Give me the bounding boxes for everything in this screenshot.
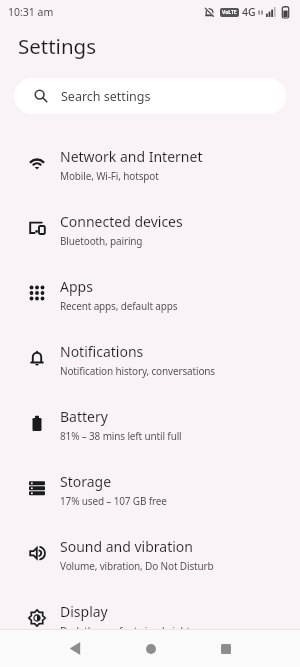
staticText: 10:31 am bbox=[8, 5, 54, 19]
staticText: Apps bbox=[60, 277, 93, 296]
staticText: Settings bbox=[18, 32, 97, 60]
button[interactable]: Search settings bbox=[14, 78, 286, 114]
button[interactable]: Battery bbox=[0, 390, 300, 455]
staticText: Dark theme, font size, brightness bbox=[60, 624, 211, 638]
staticText: Network and Internet bbox=[60, 147, 203, 166]
staticText: Sound and vibration bbox=[60, 537, 193, 556]
staticText: Mobile, Wi-Fi, hotspot bbox=[60, 169, 159, 183]
staticText: 4G bbox=[242, 5, 256, 19]
button[interactable] bbox=[38, 630, 113, 667]
staticText: Search settings bbox=[61, 88, 151, 105]
staticText: 17% used – 107 GB free bbox=[60, 494, 167, 508]
staticText: 81% – 38 mins left until full bbox=[60, 429, 182, 443]
button[interactable]: Apps bbox=[0, 260, 300, 325]
button[interactable]: Display bbox=[0, 585, 300, 650]
staticText: Volume, vibration, Do Not Disturb bbox=[60, 559, 214, 573]
staticText: Recent apps, default apps bbox=[60, 299, 178, 313]
staticText: Storage bbox=[60, 472, 112, 491]
button[interactable]: Connected devices bbox=[0, 195, 300, 260]
staticText: Connected devices bbox=[60, 212, 183, 231]
staticText: Notifications bbox=[60, 342, 144, 361]
staticText: Battery bbox=[60, 407, 108, 426]
button[interactable]: Storage bbox=[0, 455, 300, 520]
staticText: Bluetooth, pairing bbox=[60, 234, 143, 248]
button[interactable] bbox=[188, 630, 263, 667]
staticText: Notification history, conversations bbox=[60, 364, 215, 378]
button[interactable]: Notifications bbox=[0, 325, 300, 390]
button[interactable] bbox=[113, 630, 188, 667]
button[interactable]: Sound and vibration bbox=[0, 520, 300, 585]
button[interactable]: Network and Internet bbox=[0, 130, 300, 195]
staticText: VoLTE bbox=[222, 9, 237, 16]
staticText: Display bbox=[60, 602, 108, 621]
